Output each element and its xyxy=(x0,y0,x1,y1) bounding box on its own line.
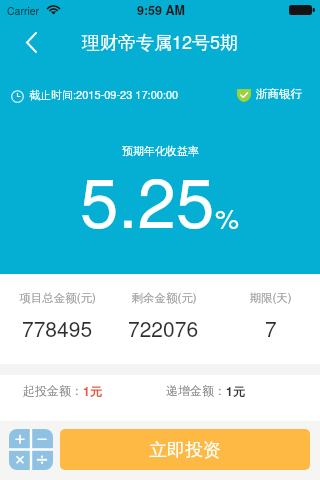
staticText: 理财帝专属12号5期 xyxy=(82,28,239,54)
staticText: 5.25 xyxy=(80,149,215,248)
button[interactable]: Calculator xyxy=(9,429,53,470)
button[interactable]: 立即投资 xyxy=(60,429,310,470)
staticText: 7 xyxy=(265,313,277,343)
staticText: 项目总金额(元) xyxy=(19,289,96,306)
staticText: 722076 xyxy=(128,313,199,343)
staticText: 预期年化收益率 xyxy=(122,144,199,158)
staticText: % xyxy=(215,198,240,237)
staticText: 期限(天) xyxy=(249,289,292,306)
staticText: 起投金额： xyxy=(23,383,83,398)
staticText: 递增金额： xyxy=(166,383,226,398)
staticText: 立即投资 xyxy=(149,439,221,462)
staticText: 778495 xyxy=(22,313,93,343)
staticText: 9:59 AM xyxy=(137,1,185,19)
staticText: 截止时间:2015-09-23 17:00:00 xyxy=(29,86,179,101)
staticText: 剩余金额(元) xyxy=(131,289,197,306)
staticText: 1元 xyxy=(226,382,245,399)
staticText: Carrier xyxy=(7,3,40,18)
staticText: 1元 xyxy=(83,382,102,399)
button[interactable]: Back xyxy=(10,21,52,63)
staticText: 浙商银行 xyxy=(256,87,302,101)
